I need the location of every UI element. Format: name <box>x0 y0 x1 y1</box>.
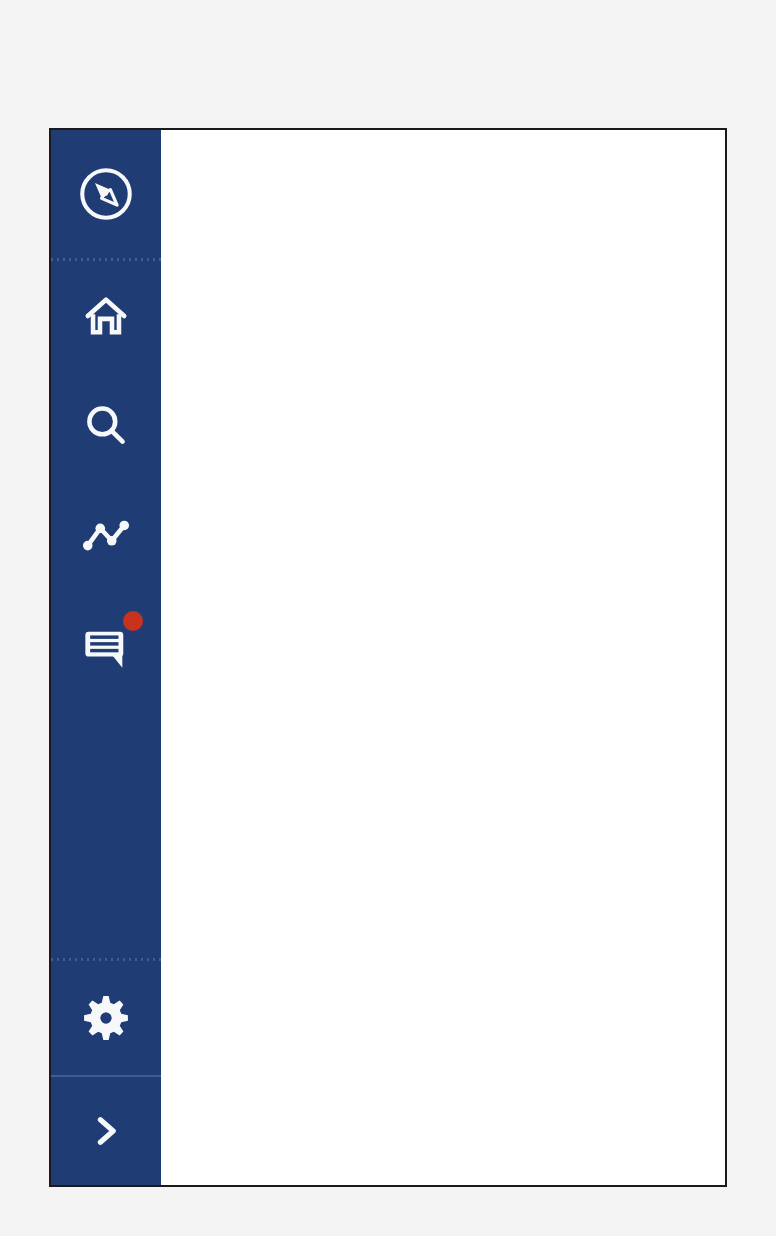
button[interactable]: Explore <box>51 130 161 258</box>
button[interactable]: Settings <box>51 961 161 1075</box>
button[interactable]: Expand <box>51 1077 161 1185</box>
button[interactable]: Messages <box>51 591 161 703</box>
button[interactable]: Home <box>51 261 161 371</box>
button[interactable]: Search <box>51 371 161 481</box>
button[interactable]: Analytics <box>51 481 161 591</box>
